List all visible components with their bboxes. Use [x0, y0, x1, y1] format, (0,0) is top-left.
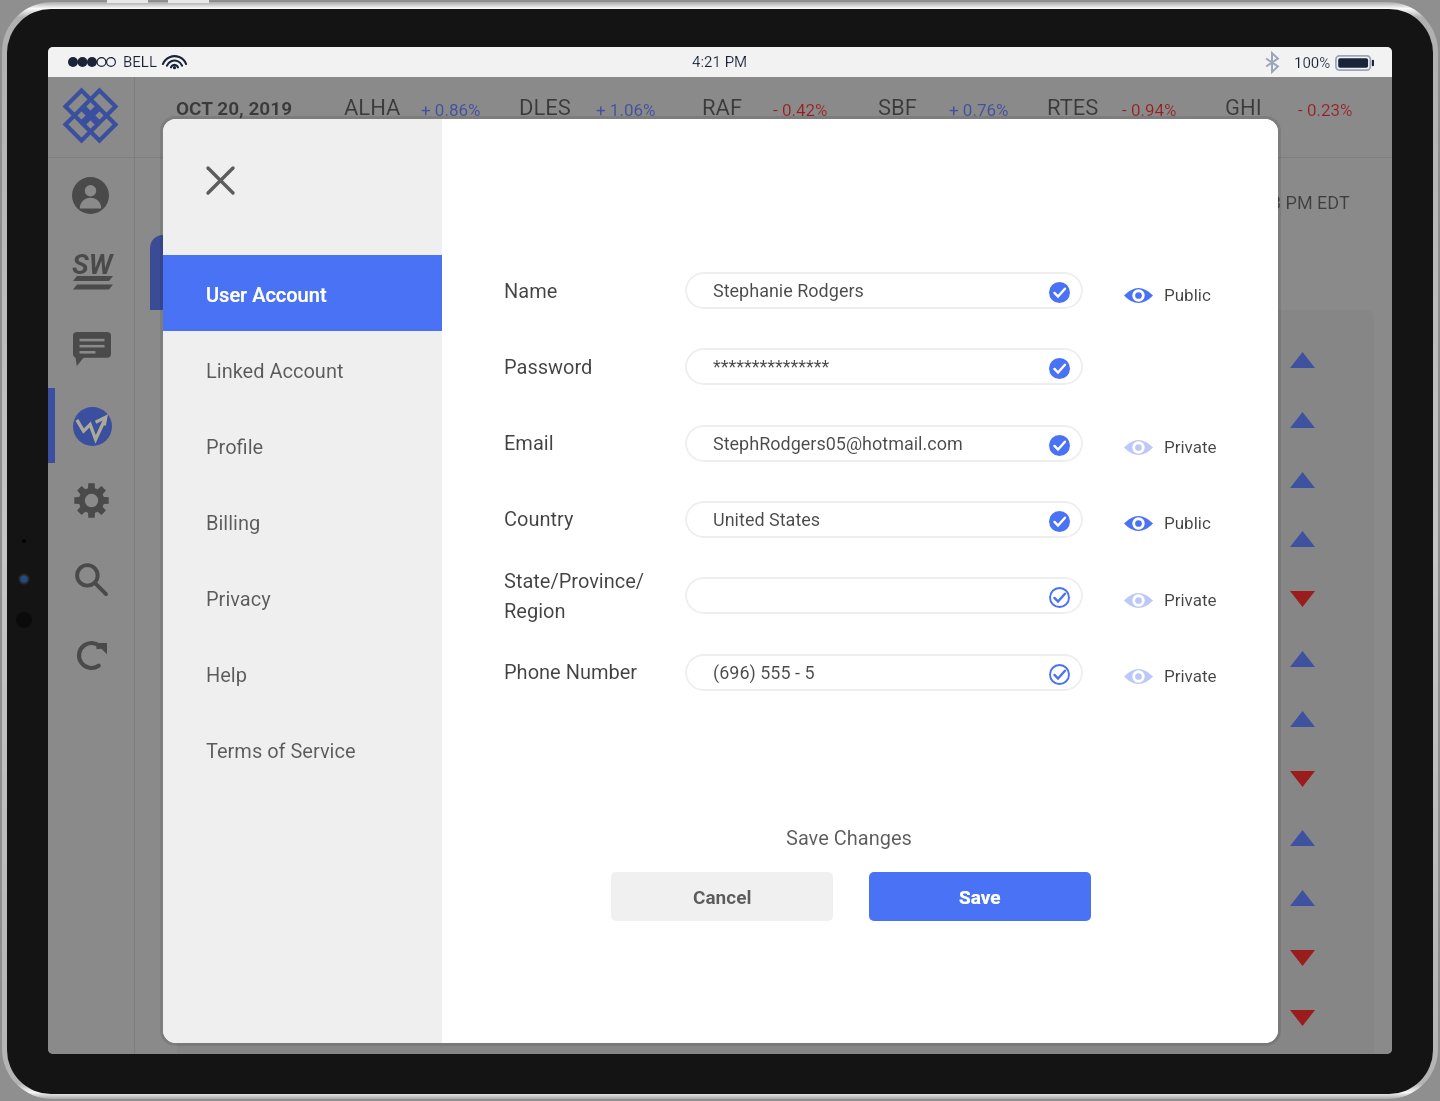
button[interactable]: Linked Account — [163, 331, 442, 407]
button[interactable]: Close — [200, 160, 241, 201]
button[interactable]: (696) 555 - 5 — [685, 654, 1083, 691]
staticText: RAF — [702, 95, 743, 121]
button[interactable]: Private — [1124, 431, 1217, 463]
staticText: Save Changes — [786, 826, 912, 849]
staticText: GHI — [1225, 95, 1262, 121]
staticText: SBF — [878, 95, 917, 121]
staticText: 100% — [1294, 54, 1331, 72]
staticText: Public — [1164, 513, 1211, 533]
staticText: + 1.06% — [596, 100, 656, 120]
staticText: *************** — [713, 356, 830, 377]
staticText: Private — [1164, 437, 1217, 457]
staticText: RTES — [1047, 95, 1099, 121]
staticText: User Account — [206, 283, 327, 306]
button[interactable]: Private — [1124, 660, 1217, 692]
staticText: Linked Account — [206, 359, 344, 382]
staticText: (696) 555 - 5 — [713, 662, 815, 683]
button[interactable] — [685, 577, 1083, 614]
staticText: Public — [1164, 285, 1211, 305]
other: Settings — [74, 483, 109, 518]
staticText: Billing — [206, 511, 261, 534]
staticText: - 0.42% — [773, 100, 828, 120]
other: Search — [75, 563, 108, 596]
staticText: ALHA — [344, 95, 401, 121]
button[interactable]: Terms of Service — [163, 711, 442, 787]
button[interactable]: StephRodgers05@hotmail.com — [685, 425, 1083, 462]
staticText: SW — [72, 248, 113, 281]
staticText: - 0.23% — [1298, 100, 1353, 120]
button[interactable]: Billing — [163, 483, 442, 559]
staticText: Help — [206, 663, 247, 686]
staticText: Password — [504, 355, 593, 378]
other: Private — [1124, 590, 1153, 611]
staticText: Stephanie Rodgers — [713, 280, 864, 301]
staticText: Country — [504, 507, 574, 530]
button[interactable]: Stephanie Rodgers — [685, 272, 1083, 309]
other: Watchlist — [73, 407, 112, 446]
staticText: - 0.94% — [1122, 100, 1177, 120]
other: Account — [72, 177, 109, 214]
staticText: StephRodgers05@hotmail.com — [713, 433, 963, 454]
staticText: Name — [504, 279, 558, 302]
other: Messages — [73, 332, 111, 366]
staticText: 3 PM EDT — [1271, 192, 1350, 213]
button[interactable]: Public — [1124, 279, 1211, 311]
button[interactable]: Privacy — [163, 559, 442, 635]
button[interactable]: Public — [1124, 507, 1211, 539]
staticText: + 0.86% — [421, 100, 481, 120]
button[interactable]: *************** — [685, 348, 1083, 385]
staticText: OCT 20, 2019 — [176, 97, 293, 119]
staticText: Save — [959, 886, 1001, 908]
staticText: DLES — [519, 95, 571, 121]
button[interactable]: Private — [1124, 584, 1217, 616]
other: Private — [1124, 437, 1153, 458]
staticText: Cancel — [693, 886, 752, 908]
staticText: Email — [504, 431, 554, 454]
staticText: 4:21 PM — [692, 53, 748, 71]
staticText: Private — [1164, 666, 1217, 686]
button[interactable]: United States — [685, 501, 1083, 538]
button[interactable]: Help — [163, 635, 442, 711]
button[interactable]: User Account — [163, 255, 442, 331]
other: Refresh — [76, 640, 107, 671]
staticText: State/Province/ Region — [504, 569, 645, 623]
staticText: Privacy — [206, 587, 271, 610]
staticText: Phone Number — [504, 660, 638, 683]
other: Public — [1124, 285, 1153, 306]
staticText: + 0.76% — [949, 100, 1009, 120]
staticText: United States — [713, 509, 821, 530]
staticText: Profile — [206, 435, 264, 458]
button[interactable]: Save — [869, 872, 1091, 921]
other: Private — [1124, 666, 1153, 687]
other: Bluetooth — [1265, 53, 1279, 72]
staticText: BELL — [123, 53, 158, 71]
button[interactable]: Profile — [163, 407, 442, 483]
button[interactable]: Cancel — [611, 872, 833, 921]
other: Public — [1124, 513, 1153, 534]
other: SW — [73, 253, 116, 291]
staticText: Terms of Service — [206, 739, 356, 762]
staticText: Private — [1164, 590, 1217, 610]
